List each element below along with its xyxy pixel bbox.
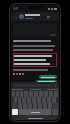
staticText: 9:41: [13, 7, 19, 11]
button[interactable]: Key: [20, 91, 23, 97]
button[interactable]: More options: [51, 14, 57, 20]
button[interactable]: Key: [14, 97, 17, 103]
button[interactable]: Archive: [45, 14, 51, 20]
button[interactable]: Contact avatar: [19, 14, 24, 19]
button[interactable]: Key: [16, 91, 19, 97]
button[interactable]: Send: [54, 84, 57, 87]
button[interactable]: [13, 53, 57, 67]
button[interactable]: Symbols: [12, 109, 18, 115]
button[interactable]: [39, 75, 57, 79]
button[interactable]: Key: [18, 97, 21, 103]
button[interactable]: Space: [19, 109, 51, 115]
button[interactable]: [36, 80, 57, 82]
button[interactable]: Back: [13, 14, 19, 20]
button[interactable]: Key: [12, 91, 15, 97]
button[interactable]: [13, 23, 57, 37]
